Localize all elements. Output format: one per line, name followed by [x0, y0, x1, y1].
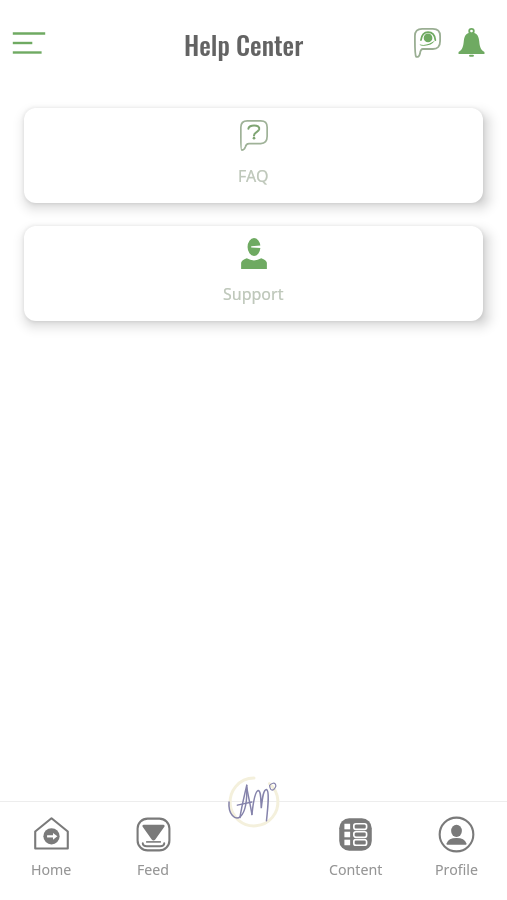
- staticText: Help Center: [184, 25, 304, 64]
- staticText: Profile: [435, 860, 478, 879]
- button[interactable]: Home: [0, 816, 102, 879]
- staticText: Feed: [137, 860, 170, 879]
- button[interactable]: Notifications: [449, 21, 493, 65]
- staticText: FAQ: [238, 165, 269, 187]
- button[interactable]: Support: [24, 226, 483, 321]
- button[interactable]: Feed: [102, 816, 204, 879]
- staticText: Content: [329, 860, 383, 879]
- staticText: Support: [223, 283, 284, 305]
- button[interactable]: Logo: [228, 776, 280, 828]
- staticText: Home: [31, 860, 72, 879]
- button[interactable]: FAQ: [24, 108, 483, 203]
- button[interactable]: Content: [305, 816, 406, 879]
- button[interactable]: Menu: [2, 16, 56, 70]
- button[interactable]: Messages: [405, 21, 449, 65]
- button[interactable]: Profile: [406, 816, 507, 879]
